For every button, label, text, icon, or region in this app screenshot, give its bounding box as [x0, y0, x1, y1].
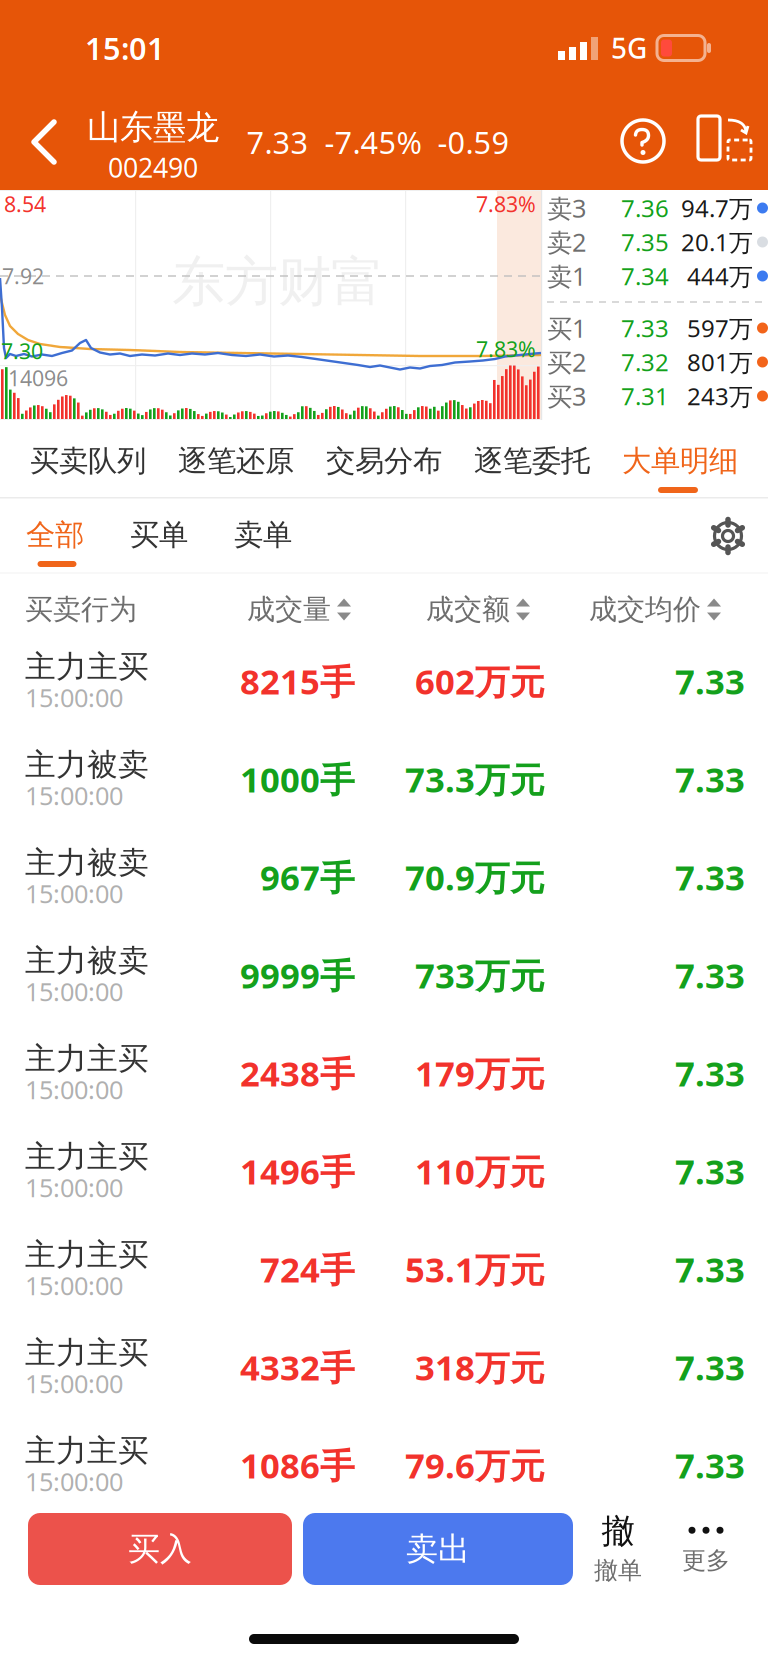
staticText: 597万 [687, 312, 753, 344]
staticText: 724手 [260, 1246, 355, 1292]
staticText: 733万元 [415, 952, 545, 998]
button[interactable]: Back [22, 112, 66, 172]
staticText: 全部 [26, 517, 84, 553]
button[interactable]: 买卖队列 [30, 443, 146, 479]
staticText: 7.32 [621, 346, 669, 378]
staticText: 卖出 [406, 1529, 470, 1569]
staticText: 5G [611, 29, 647, 67]
staticText: 主力主买 [25, 648, 149, 686]
staticText: 14096 [8, 364, 68, 392]
staticText: 53.1万元 [405, 1246, 545, 1292]
staticText: 318万元 [415, 1344, 545, 1390]
staticText: 买3 [547, 379, 586, 413]
staticText: -0.59 [437, 122, 509, 162]
staticText: 179万元 [415, 1050, 545, 1096]
staticText: 9999手 [240, 952, 355, 998]
staticText: 买2 [547, 345, 586, 379]
staticText: 4332手 [240, 1344, 355, 1390]
staticText: 1086手 [240, 1442, 355, 1488]
staticText: 东方财富 [172, 249, 384, 315]
staticText: 7.33 [675, 756, 745, 802]
staticText: 7.35 [621, 226, 669, 258]
staticText: 7.33 [675, 1442, 745, 1488]
button[interactable]: Landscape mode [698, 116, 754, 166]
staticText: 15:00:00 [25, 1269, 123, 1302]
staticText: 15:00:00 [25, 975, 123, 1008]
staticText: 15:00:00 [25, 779, 123, 812]
staticText: 山东墨龙 [87, 107, 219, 148]
staticText: 70.9万元 [405, 854, 545, 900]
button[interactable]: 交易分布 [326, 443, 442, 479]
staticText: 主力主买 [25, 1040, 149, 1078]
button[interactable]: Settings [706, 514, 750, 558]
staticText: 7.33 [675, 1050, 745, 1096]
staticText: 1496手 [240, 1148, 355, 1194]
staticText: 2438手 [240, 1050, 355, 1096]
staticText: 卖单 [234, 517, 292, 553]
staticText: 7.33 [675, 658, 745, 704]
staticText: 卖3 [547, 191, 586, 225]
staticText: 444万 [687, 260, 753, 292]
staticText: 7.33 [675, 1148, 745, 1194]
staticText: 7.33 [675, 952, 745, 998]
staticText: 7.33 [675, 854, 745, 900]
button[interactable]: 买入 [28, 1513, 292, 1585]
staticText: 15:00:00 [25, 877, 123, 910]
staticText: 主力主买 [25, 1432, 149, 1470]
staticText: 15:00:00 [25, 1171, 123, 1204]
button[interactable]: 逐笔还原 [178, 443, 294, 479]
button[interactable]: 卖单 [234, 517, 292, 553]
staticText: 买卖队列 [30, 443, 146, 479]
button[interactable]: 全部 [26, 517, 84, 553]
staticText: 主力主买 [25, 1334, 149, 1372]
button[interactable]: Help [621, 119, 665, 163]
button[interactable]: More [671, 1514, 741, 1588]
staticText: 交易分布 [326, 443, 442, 479]
button[interactable]: 大单明细 [622, 443, 738, 479]
staticText: 15:00:00 [25, 681, 123, 714]
staticText: -7.45% [324, 122, 421, 162]
staticText: 买入 [128, 1529, 192, 1569]
staticText: 主力主买 [25, 1236, 149, 1274]
staticText: 7.33 [621, 312, 669, 344]
staticText: 卖2 [547, 225, 586, 259]
staticText: 7.83% [476, 190, 536, 218]
staticText: 15:00:00 [25, 1073, 123, 1106]
button[interactable]: 成交额 [426, 592, 531, 627]
button[interactable]: 买单 [130, 517, 188, 553]
button[interactable]: 逐笔委托 [474, 443, 590, 479]
staticText: 主力被卖 [25, 844, 149, 882]
button[interactable]: 成交量 [247, 592, 352, 627]
staticText: 002490 [108, 150, 198, 185]
staticText: 110万元 [415, 1148, 545, 1194]
staticText: 逐笔还原 [178, 443, 294, 479]
staticText: 主力主买 [25, 1138, 149, 1176]
staticText: 8.54 [4, 190, 46, 218]
staticText: 7.33 [246, 122, 308, 162]
staticText: 15:00:00 [25, 1465, 123, 1498]
button[interactable]: 撤 [583, 1508, 653, 1588]
staticText: 20.1万 [681, 226, 753, 258]
staticText: 801万 [687, 346, 753, 378]
staticText: 7.33 [675, 1246, 745, 1292]
staticText: 1000手 [240, 756, 355, 802]
staticText: 243万 [687, 380, 753, 412]
staticText: 买1 [547, 311, 586, 345]
staticText: 买卖行为 [25, 592, 137, 627]
staticText: 8215手 [240, 658, 355, 704]
staticText: 7.36 [621, 192, 669, 224]
staticText: 撤单 [594, 1556, 642, 1585]
staticText: 成交均价 [589, 592, 701, 627]
staticText: 7.30 [1, 337, 43, 365]
staticText: 7.92 [2, 262, 44, 290]
staticText: 7.33 [675, 1344, 745, 1390]
staticText: 94.7万 [681, 192, 753, 224]
staticText: 967手 [260, 854, 355, 900]
staticText: 79.6万元 [405, 1442, 545, 1488]
button[interactable]: 成交均价 [589, 592, 722, 627]
staticText: 更多 [682, 1546, 730, 1575]
staticText: 逐笔委托 [474, 443, 590, 479]
staticText: 7.83% [476, 335, 536, 363]
staticText: 买单 [130, 517, 188, 553]
button[interactable]: 卖出 [303, 1513, 573, 1585]
